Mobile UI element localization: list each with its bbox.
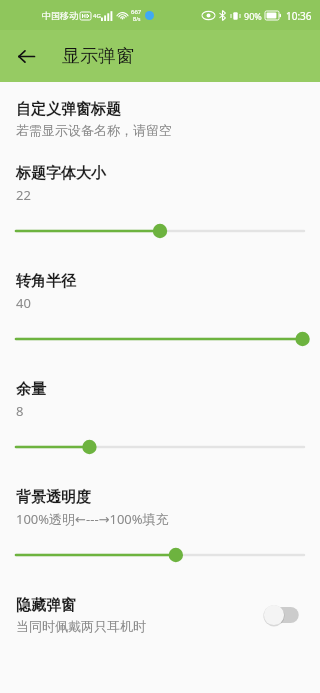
staticText: 隐藏弹窗 (16, 596, 76, 615)
button[interactable] (0, 328, 320, 350)
staticText: 10:36 (286, 9, 312, 23)
button[interactable] (0, 436, 320, 458)
staticText: 4G (93, 12, 101, 20)
button[interactable]: 隐藏弹窗 (0, 594, 320, 636)
staticText: 90% (244, 10, 262, 22)
staticText: 667 (131, 8, 142, 16)
staticText: 中国移动 (42, 10, 78, 21)
staticText: 100%透明←---→100%填充 (16, 510, 169, 528)
staticText: 自定义弹窗标题 (16, 100, 121, 119)
button[interactable]: 隐藏弹窗 toggle (260, 601, 304, 629)
staticText: 显示弹窗 (62, 45, 134, 68)
staticText: 若需显示设备名称，请留空 (16, 122, 172, 138)
staticText: 当同时佩戴两只耳机时 (16, 618, 146, 634)
staticText: 背景透明度 (16, 488, 91, 507)
staticText: 标题字体大小 (16, 164, 106, 183)
staticText: 转角半径 (16, 272, 76, 291)
button[interactable]: Back (8, 38, 44, 74)
staticText: 8 (16, 402, 24, 420)
staticText: 40 (16, 294, 31, 312)
staticText: 22 (16, 186, 31, 204)
staticText: B/s (133, 16, 141, 23)
staticText: 余量 (16, 380, 46, 399)
button[interactable] (0, 544, 320, 566)
button[interactable] (0, 220, 320, 242)
